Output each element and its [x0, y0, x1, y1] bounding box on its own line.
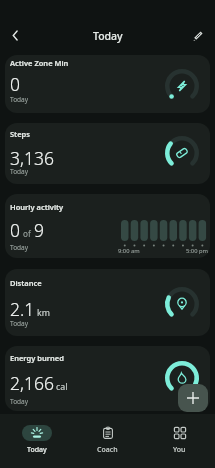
- button[interactable]: Coach: [72, 414, 143, 455]
- staticText: 2,166: [10, 371, 54, 395]
- button[interactable]: [192, 30, 204, 42]
- staticText: You: [173, 445, 186, 455]
- staticText: Distance: [10, 278, 42, 288]
- staticText: Energy burned: [10, 353, 64, 363]
- staticText: Steps: [10, 129, 30, 139]
- staticText: Coach: [97, 445, 118, 455]
- staticText: 9: [34, 218, 44, 242]
- button[interactable]: [11, 31, 20, 40]
- staticText: 3,136: [10, 146, 54, 170]
- button[interactable]: Distance: [5, 269, 210, 336]
- button[interactable]: Energy burned: [5, 346, 210, 411]
- staticText: 9:00 am: [118, 247, 140, 255]
- staticText: of: [23, 228, 31, 239]
- staticText: Today: [10, 167, 29, 176]
- staticText: Today: [10, 243, 29, 252]
- button[interactable]: Hourly activity: [5, 194, 210, 258]
- staticText: 5:00 pm: [186, 247, 208, 255]
- button[interactable]: [178, 384, 208, 412]
- staticText: cal: [56, 381, 68, 393]
- staticText: Today: [10, 319, 29, 328]
- staticText: Today: [27, 445, 47, 455]
- staticText: Hourly activity: [10, 202, 64, 212]
- staticText: km: [37, 307, 50, 319]
- staticText: 0: [10, 218, 20, 242]
- staticText: 2.1: [10, 297, 35, 321]
- staticText: Today: [93, 29, 123, 43]
- staticText: 0: [10, 72, 20, 96]
- button[interactable]: Today: [1, 414, 72, 455]
- staticText: Today: [10, 95, 29, 104]
- button[interactable]: Active Zone Min: [5, 55, 210, 113]
- button[interactable]: You: [144, 414, 215, 455]
- staticText: Today: [10, 397, 29, 406]
- button[interactable]: Steps: [5, 123, 210, 184]
- staticText: Active Zone Min: [10, 58, 69, 68]
